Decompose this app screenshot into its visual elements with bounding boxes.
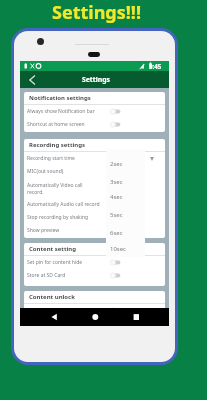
staticText: 10sec bbox=[110, 245, 127, 253]
button[interactable]: 4sec bbox=[106, 191, 145, 203]
button[interactable]: MIC(out sound) bbox=[24, 165, 165, 178]
staticText: Show preview bbox=[27, 227, 60, 234]
button[interactable]: Stop recording by shaking bbox=[24, 211, 165, 224]
button[interactable]: Shortcut at home screen bbox=[24, 118, 165, 131]
button[interactable]: 5sec bbox=[106, 209, 145, 221]
button[interactable]: 6sec bbox=[106, 227, 145, 239]
staticText: Stop recording by shaking bbox=[27, 214, 89, 221]
staticText: 6sec bbox=[110, 229, 123, 237]
staticText: Content unlock bbox=[29, 293, 75, 301]
staticText: Recording settings bbox=[29, 141, 86, 149]
staticText: Notification settings bbox=[29, 94, 91, 102]
button[interactable]: 2sec bbox=[106, 158, 145, 170]
button[interactable]: Set pin for content hide bbox=[24, 256, 165, 269]
button[interactable]: Always show Notification bar bbox=[24, 105, 165, 118]
staticText: Store at SD Card bbox=[27, 272, 66, 279]
staticText: Automatically Video call record. bbox=[27, 182, 83, 195]
staticText: 5sec bbox=[110, 211, 123, 219]
button[interactable]: Back bbox=[20, 71, 43, 88]
button[interactable]: Back bbox=[20, 308, 77, 326]
staticText: 4sec bbox=[110, 193, 123, 201]
button[interactable]: Store at SD Card bbox=[24, 269, 165, 282]
button[interactable]: Automatically Video call record. bbox=[24, 178, 165, 198]
staticText: 9:45 bbox=[149, 62, 162, 70]
button[interactable]: Password for content hide bbox=[24, 304, 165, 317]
button[interactable]: Show preview bbox=[24, 224, 165, 237]
button[interactable]: 3sec bbox=[106, 176, 145, 188]
staticText: Recording start time bbox=[27, 155, 75, 162]
staticText: Shortcut at home screen bbox=[27, 121, 85, 128]
staticText: Settings!!! bbox=[52, 0, 142, 24]
button[interactable]: Recording start time bbox=[24, 152, 165, 165]
staticText: 3sec bbox=[110, 178, 123, 186]
staticText: Settings bbox=[82, 75, 110, 84]
staticText: Automatically Audio call record bbox=[27, 201, 100, 208]
staticText: MIC(out sound) bbox=[27, 168, 64, 175]
staticText: Password for content hide bbox=[27, 307, 89, 314]
button[interactable]: 10sec bbox=[106, 243, 145, 255]
staticText: Set pin for content hide bbox=[27, 259, 83, 266]
button[interactable]: Automatically Audio call record bbox=[24, 198, 165, 211]
staticText: 2sec bbox=[110, 160, 123, 168]
staticText: Always show Notification bar bbox=[27, 108, 95, 115]
staticText: Content setting bbox=[29, 245, 77, 253]
